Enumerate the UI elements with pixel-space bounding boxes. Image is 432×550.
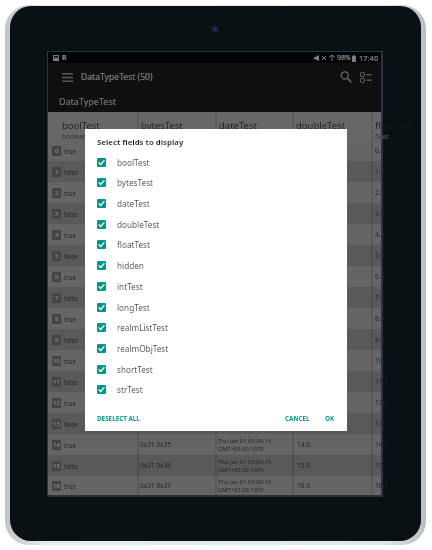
staticText: 15.0 (297, 461, 310, 470)
staticText: 16 (53, 482, 60, 490)
staticText: 1 (55, 168, 59, 176)
staticText: 17:40 (359, 53, 379, 63)
staticText: DESELECT ALL (97, 414, 140, 423)
staticText: DataTypeTest (59, 95, 116, 107)
staticText: GMT+03:00 1970 (218, 424, 264, 432)
staticText: true (64, 315, 77, 323)
button[interactable]: realmObjTest (85, 338, 347, 359)
staticText: Thu Jan 01 03:00:16 (218, 478, 271, 486)
staticText: 0x31 0x31 (140, 146, 171, 155)
staticText: 13.0 (375, 419, 388, 428)
staticText: 0.0 (375, 146, 385, 155)
staticText: true (64, 441, 77, 449)
button[interactable]: CANCEL (278, 408, 317, 429)
button[interactable]: DESELECT ALL (90, 408, 147, 429)
button[interactable]: realmListTest (85, 317, 347, 338)
button[interactable]: shortTest (85, 359, 347, 380)
staticText: 5.0 (375, 251, 385, 260)
button[interactable]: Open navigation drawer (57, 67, 77, 87)
button[interactable]: Search (336, 67, 356, 87)
button[interactable]: hidden (85, 255, 347, 276)
staticText: false (64, 294, 78, 302)
staticText: true (64, 147, 77, 155)
staticText: 0x31 0x35 (140, 440, 171, 449)
button[interactable]: bytesTest (85, 172, 347, 193)
staticText: true (64, 189, 77, 197)
staticText: 4.0 (375, 230, 385, 239)
staticText: GMT+03:00 1970 (218, 486, 264, 494)
staticText: doubleTest (296, 119, 346, 132)
staticText: 98% (337, 53, 351, 63)
staticText: 0x31 0x36 (140, 461, 171, 470)
staticText: 11 (53, 378, 60, 386)
button[interactable]: boolTest (85, 152, 347, 173)
staticText: Thu Jan 01 03:00:15 (218, 458, 271, 466)
staticText: false (64, 168, 78, 176)
staticText: 2.0 (375, 188, 385, 197)
staticText: doubleTest (117, 219, 160, 230)
staticText: DataTypeTest (50) (81, 71, 153, 83)
button[interactable]: intTest (85, 276, 347, 297)
staticText: GMT+03:00 1970 (218, 445, 264, 453)
button[interactable]: floatTest (85, 234, 347, 255)
staticText: realmListTest (117, 322, 168, 333)
staticText: 4 (55, 231, 59, 239)
staticText: true (64, 357, 77, 365)
button[interactable]: Select fields to display (356, 67, 376, 87)
button[interactable]: longTest (85, 297, 347, 318)
staticText: 10 (53, 357, 60, 365)
staticText: 6.0 (375, 272, 385, 281)
staticText: false (64, 420, 78, 428)
staticText: bytesTest (141, 119, 183, 132)
staticText: 15.0 (375, 461, 388, 470)
button[interactable]: strTest (85, 379, 347, 400)
staticText: 12 (53, 399, 60, 407)
staticText: 8.0 (375, 314, 385, 323)
staticText: shortTest (117, 364, 153, 375)
staticText: 14 (53, 441, 60, 449)
staticText: 9 (55, 336, 59, 344)
staticText: false (64, 210, 78, 218)
staticText: false (64, 462, 78, 470)
staticText: 7 (55, 294, 59, 302)
staticText: bytesTest (117, 177, 154, 188)
staticText: floatTest (117, 239, 150, 250)
staticText: 11.0 (375, 377, 388, 386)
staticText: 14.0 (297, 440, 310, 449)
button[interactable]: OK (318, 408, 342, 429)
button[interactable]: doubleTest (85, 214, 347, 235)
button[interactable]: dateTest (85, 193, 347, 214)
staticText: longTest (117, 302, 150, 313)
